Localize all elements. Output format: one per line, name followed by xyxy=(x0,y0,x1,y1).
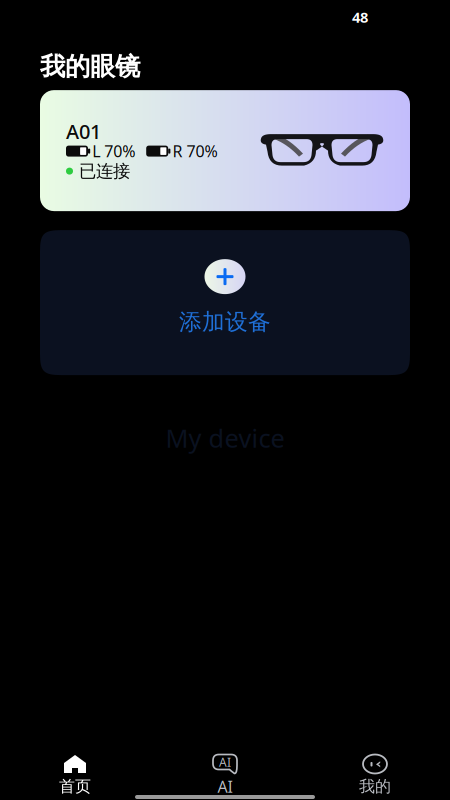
staticText: AI xyxy=(217,776,232,797)
staticText: 添加设备 xyxy=(179,308,271,336)
staticText: 我的 xyxy=(359,777,391,796)
button[interactable]: AI xyxy=(150,755,300,794)
button[interactable]: 我的 xyxy=(300,755,450,794)
staticText: L 70% xyxy=(92,140,135,162)
staticText: 我的眼镜 xyxy=(40,51,140,82)
staticText: My device xyxy=(165,421,284,455)
button[interactable]: 添加设备 xyxy=(40,230,410,375)
staticText: 首页 xyxy=(59,777,91,796)
button[interactable]: 首页 xyxy=(0,755,150,794)
staticText: 48 xyxy=(352,7,368,27)
staticText: 已连接 xyxy=(79,160,130,182)
staticText: A01 xyxy=(66,118,101,144)
staticText: R 70% xyxy=(172,140,217,162)
staticText: AI xyxy=(219,754,231,770)
